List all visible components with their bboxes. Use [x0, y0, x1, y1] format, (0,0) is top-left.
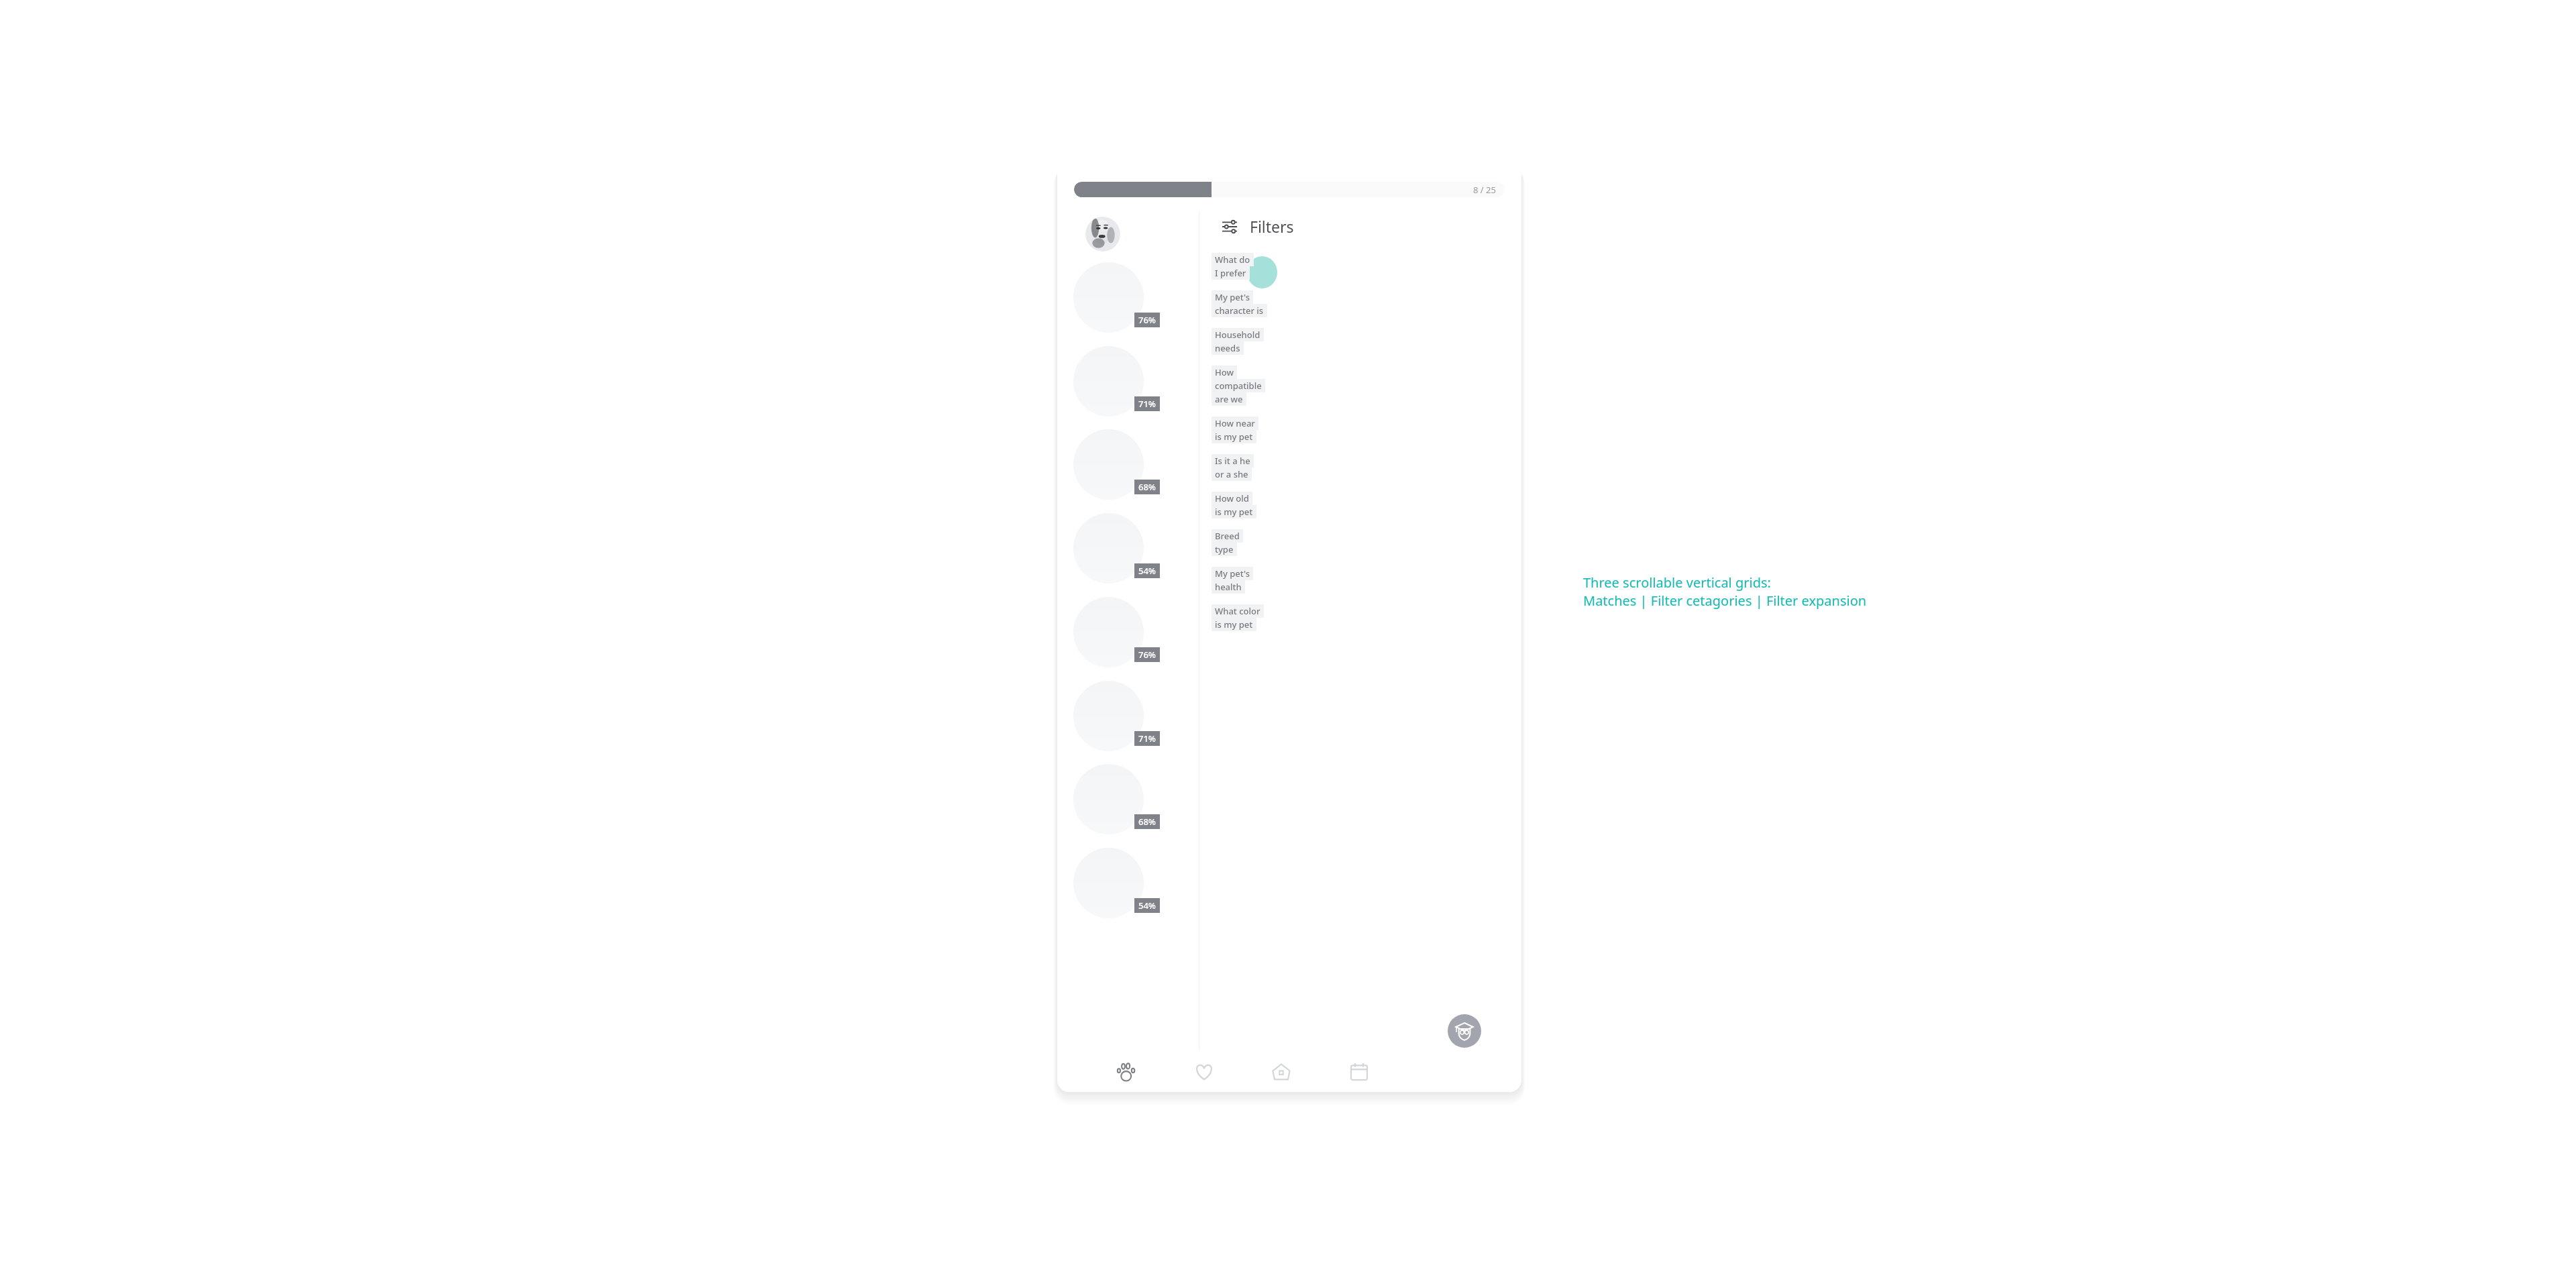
- staticText: Is it a he: [1215, 455, 1250, 467]
- button[interactable]: 68%: [1073, 764, 1144, 834]
- staticText: What color: [1215, 605, 1260, 617]
- staticText: are we: [1215, 393, 1243, 405]
- staticText: How old: [1215, 492, 1249, 504]
- staticText: Three scrollable vertical grids:: [1583, 573, 1771, 592]
- button[interactable]: What do: [1212, 253, 1254, 280]
- staticText: Matches | Filter cetagories | Filter exp…: [1583, 592, 1867, 610]
- staticText: Filters: [1250, 216, 1294, 237]
- button[interactable]: Filters: [1222, 216, 1294, 237]
- staticText: or a she: [1215, 468, 1248, 480]
- button[interactable]: Household: [1212, 328, 1264, 355]
- button[interactable]: 54%: [1073, 513, 1144, 584]
- staticText: 54%: [1138, 899, 1156, 912]
- button[interactable]: Pets: [1109, 1054, 1144, 1089]
- button[interactable]: How near: [1212, 417, 1258, 443]
- staticText: 76%: [1138, 314, 1156, 326]
- staticText: 68%: [1138, 816, 1156, 828]
- button[interactable]: 8 / 25: [1074, 182, 1505, 197]
- button[interactable]: Favourites: [1187, 1054, 1222, 1089]
- button[interactable]: 76%: [1073, 262, 1144, 333]
- button[interactable]: Calendar: [1342, 1054, 1377, 1089]
- staticText: is my pet: [1215, 431, 1253, 443]
- button[interactable]: 68%: [1073, 429, 1144, 500]
- button[interactable]: 76%: [1073, 597, 1144, 667]
- staticText: 8 / 25: [1473, 184, 1496, 196]
- button[interactable]: Pet school: [1448, 1014, 1481, 1048]
- staticText: How: [1215, 366, 1234, 378]
- staticText: 71%: [1138, 732, 1156, 745]
- staticText: I prefer: [1215, 267, 1246, 279]
- button[interactable]: Breed: [1212, 529, 1243, 556]
- staticText: 68%: [1138, 481, 1156, 493]
- staticText: My pet's: [1215, 567, 1250, 580]
- staticText: 54%: [1138, 565, 1156, 577]
- button[interactable]: Is it a he: [1212, 454, 1254, 481]
- staticText: is my pet: [1215, 618, 1253, 630]
- button[interactable]: 71%: [1073, 346, 1144, 417]
- staticText: 76%: [1138, 649, 1156, 661]
- button[interactable]: My pet's: [1212, 290, 1267, 317]
- button[interactable]: 71%: [1073, 681, 1144, 751]
- button[interactable]: My pet's: [1212, 567, 1253, 594]
- button[interactable]: 54%: [1073, 848, 1144, 918]
- staticText: health: [1215, 581, 1242, 593]
- button[interactable]: Home: [1264, 1054, 1299, 1089]
- staticText: character is: [1215, 305, 1264, 317]
- staticText: type: [1215, 543, 1234, 555]
- staticText: is my pet: [1215, 506, 1253, 518]
- staticText: How near: [1215, 417, 1255, 429]
- staticText: Household: [1215, 329, 1260, 341]
- button[interactable]: How: [1212, 366, 1265, 406]
- button[interactable]: [1085, 217, 1120, 252]
- staticText: needs: [1215, 342, 1240, 354]
- staticText: 71%: [1138, 398, 1156, 410]
- staticText: My pet's: [1215, 291, 1250, 303]
- staticText: compatible: [1215, 380, 1262, 392]
- button[interactable]: How old: [1212, 492, 1256, 518]
- staticText: Breed: [1215, 530, 1240, 542]
- button[interactable]: What color: [1212, 604, 1264, 631]
- staticText: What do: [1215, 254, 1250, 266]
